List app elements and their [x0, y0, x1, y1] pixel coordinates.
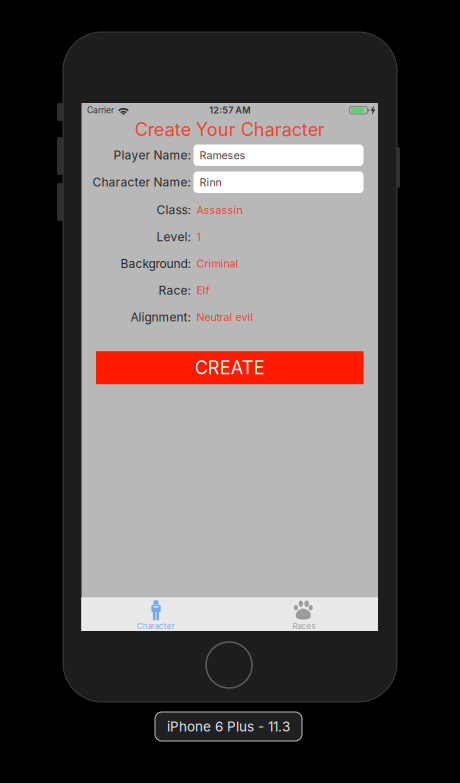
staticText: Elf	[196, 284, 209, 297]
staticText: Character	[137, 621, 175, 631]
staticText: 12:57 AM	[209, 105, 250, 116]
staticText: Alignment:	[130, 310, 190, 324]
staticText: Rinn	[199, 176, 221, 189]
staticText: Rameses	[199, 149, 245, 162]
staticText: Carrier	[87, 105, 114, 115]
staticText: Level:	[156, 229, 190, 244]
staticText: Race:	[158, 283, 190, 298]
staticText: Criminal	[196, 257, 238, 270]
button[interactable]: CREATE	[96, 351, 363, 384]
staticText: Character Name:	[92, 175, 190, 189]
staticText: Neutral evil	[196, 311, 253, 324]
staticText: CREATE	[195, 357, 265, 379]
button[interactable]: Character	[81, 598, 230, 631]
staticText: Races	[292, 621, 315, 631]
button[interactable]: Races	[230, 598, 378, 631]
staticText: Class:	[156, 203, 190, 217]
staticText: Player Name:	[113, 148, 190, 162]
staticText: 1	[196, 230, 200, 243]
staticText: Assassin	[196, 203, 242, 216]
staticText: Background:	[120, 256, 190, 271]
staticText: iPhone 6 Plus - 11.3	[167, 718, 290, 735]
staticText: Create Your Character	[135, 119, 325, 140]
